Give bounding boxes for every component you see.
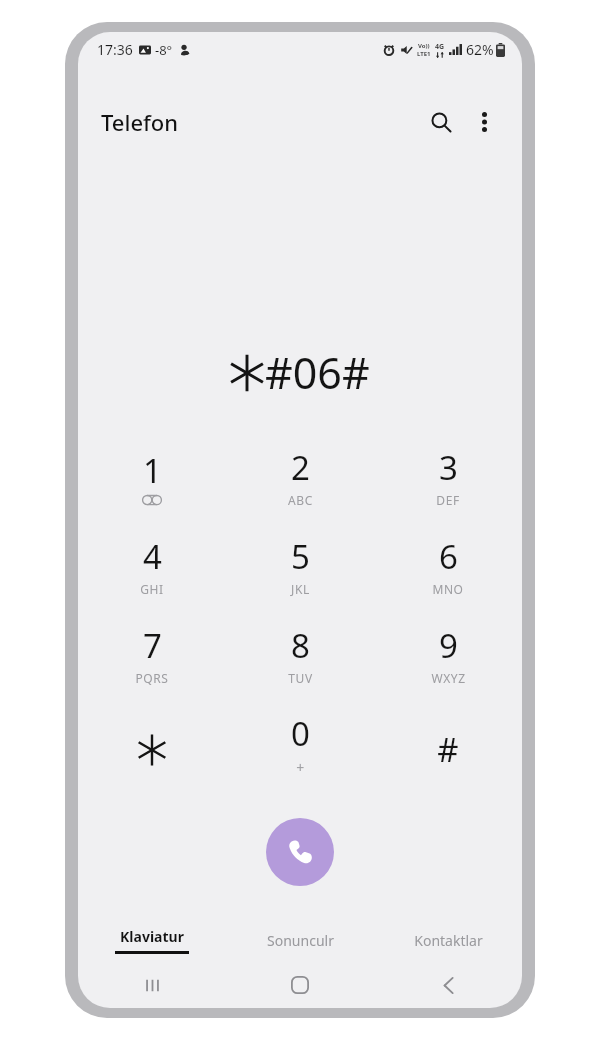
staticText: 5 [291, 534, 310, 579]
staticText: #06# [265, 343, 370, 402]
button[interactable]: 9 [374, 614, 522, 703]
staticText: Vo)) [418, 42, 430, 50]
button[interactable]: 4 [78, 525, 226, 614]
button[interactable]: 7 [78, 614, 226, 703]
staticText: 62% [466, 40, 494, 59]
staticText: 7 [143, 623, 162, 668]
staticText: PQRS [135, 670, 169, 686]
staticText: 4G [435, 42, 445, 52]
button[interactable]: More options [464, 102, 504, 142]
button[interactable]: Back [374, 962, 522, 1008]
staticText: DEF [436, 492, 460, 508]
button[interactable]: Recent apps [78, 962, 226, 1008]
staticText: WXYZ [431, 670, 466, 686]
staticText: 9 [439, 623, 458, 668]
staticText: 6 [439, 534, 458, 579]
staticText: 1 [143, 448, 162, 493]
staticText: MNO [432, 581, 464, 597]
button[interactable]: Call [266, 818, 334, 886]
staticText: ABC [288, 492, 313, 508]
button[interactable]: Klaviatur [78, 912, 226, 968]
button[interactable]: 8 [226, 614, 374, 703]
staticText: 2 [291, 445, 310, 490]
button[interactable] [78, 703, 226, 792]
button[interactable]: 1 [78, 436, 226, 525]
button[interactable]: Home [226, 962, 374, 1008]
button[interactable]: 6 [374, 525, 522, 614]
staticText: 3 [439, 445, 458, 490]
staticText: Sonunculr [267, 931, 334, 950]
staticText: Telefon [101, 107, 179, 137]
button[interactable]: Search [420, 101, 462, 143]
button[interactable]: 2 [226, 436, 374, 525]
staticText: -8° [155, 41, 173, 59]
staticText: 0 [291, 711, 310, 756]
staticText: Kontaktlar [414, 931, 483, 950]
button[interactable]: 5 [226, 525, 374, 614]
button[interactable]: Sonunculr [226, 912, 374, 968]
staticText: # [437, 727, 459, 772]
staticText: JKL [291, 581, 310, 597]
button[interactable]: # [374, 703, 522, 792]
staticText: 4 [143, 534, 162, 579]
staticText: GHI [140, 581, 164, 597]
staticText: Klaviatur [120, 927, 184, 946]
staticText: LTE1 [417, 50, 431, 58]
button[interactable]: 0 [226, 703, 374, 792]
staticText: 8 [291, 623, 310, 668]
button[interactable]: 3 [374, 436, 522, 525]
staticText: TUV [288, 670, 313, 686]
staticText: 17:36 [97, 40, 133, 59]
button[interactable]: Kontaktlar [374, 912, 522, 968]
staticText: + [296, 758, 305, 777]
